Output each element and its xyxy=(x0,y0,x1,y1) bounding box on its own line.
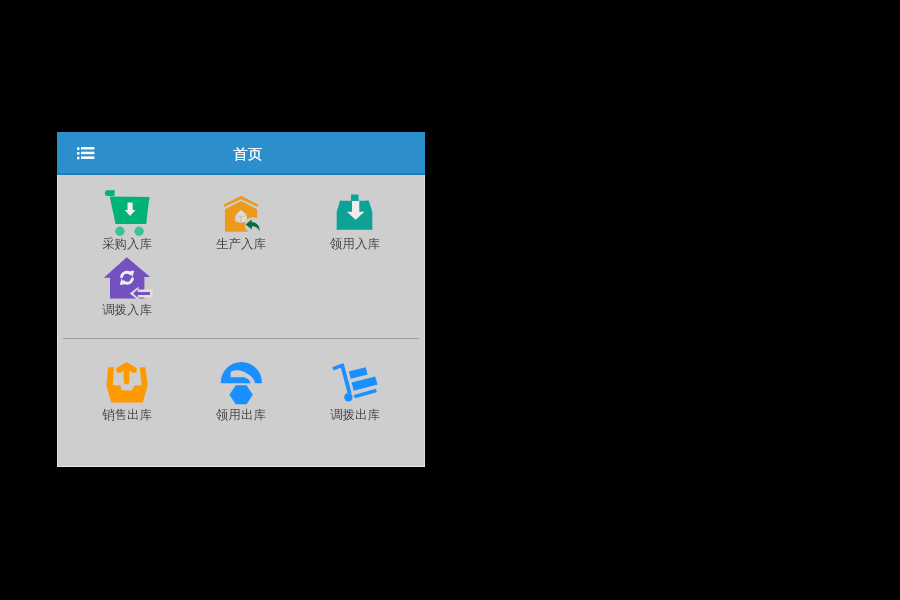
button[interactable]: 销售出库 xyxy=(70,361,184,423)
button[interactable]: 生产入库 xyxy=(184,190,298,252)
button[interactable]: 领用出库 xyxy=(184,361,298,423)
staticText: 领用入库 xyxy=(330,236,380,252)
button[interactable]: 调拨出库 xyxy=(298,361,412,423)
button[interactable]: 采购入库 xyxy=(70,190,184,252)
button[interactable]: 调拨入库 xyxy=(70,256,184,318)
staticText: 领用出库 xyxy=(216,407,266,423)
staticText: 调拨出库 xyxy=(330,407,380,423)
staticText: 销售出库 xyxy=(102,407,152,423)
button[interactable]: Menu xyxy=(71,136,101,171)
staticText: 生产入库 xyxy=(216,236,266,252)
staticText: 采购入库 xyxy=(102,236,152,252)
button[interactable]: 领用入库 xyxy=(298,190,412,252)
staticText: 首页 xyxy=(233,145,262,163)
staticText: 调拨入库 xyxy=(102,302,152,318)
